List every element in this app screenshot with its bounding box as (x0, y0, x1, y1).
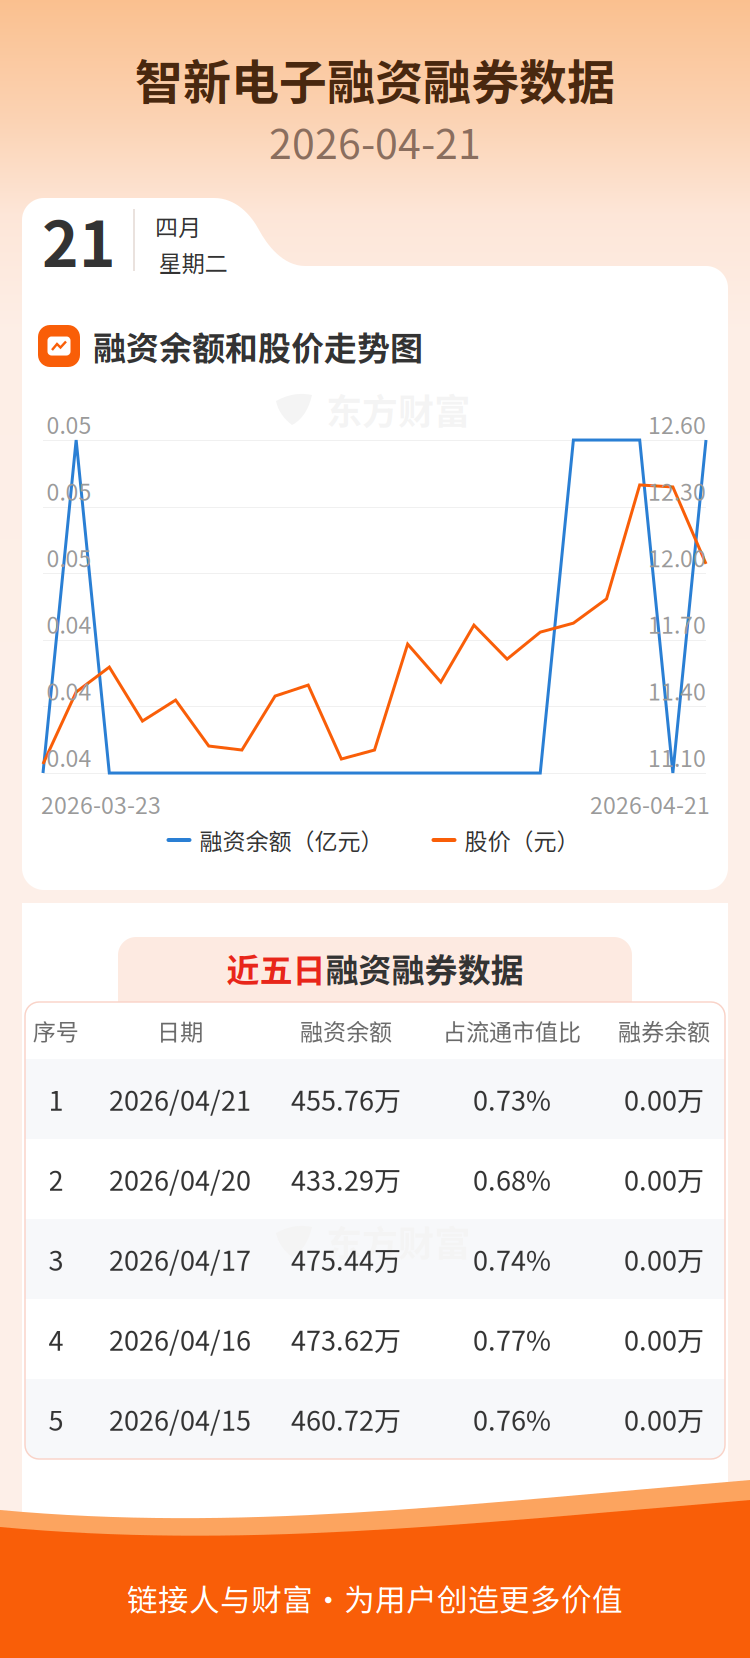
staticText: 2026/04/17 (109, 1239, 251, 1279)
staticText: 0.04 (46, 740, 91, 774)
staticText: 日期 (157, 1014, 203, 1047)
staticText: 3 (48, 1239, 63, 1279)
staticText: 1 (48, 1079, 63, 1119)
staticText: 2 (48, 1159, 63, 1199)
staticText: 0.00万 (624, 1319, 704, 1359)
staticText: 融资余额和股价走势图 (93, 322, 423, 370)
staticText: 股价（元） (464, 823, 579, 857)
staticText: 占流通市值比 (443, 1014, 581, 1047)
staticText: 0.00万 (624, 1079, 704, 1119)
staticText: 5 (48, 1399, 63, 1439)
staticText: 2026/04/21 (109, 1079, 251, 1119)
staticText: 11.70 (648, 607, 706, 640)
staticText: 475.44万 (291, 1239, 401, 1279)
staticText: 序号 (33, 1014, 79, 1047)
staticText: 12.60 (648, 407, 706, 441)
staticText: 0.05 (46, 407, 91, 441)
staticText: 0.77% (473, 1319, 551, 1359)
staticText: 12.00 (648, 540, 706, 574)
staticText: 0.00万 (624, 1239, 704, 1279)
staticText: 0.00万 (624, 1399, 704, 1439)
staticText: 2026/04/16 (109, 1319, 251, 1359)
staticText: 2026/04/15 (109, 1399, 251, 1439)
staticText: 0.73% (473, 1079, 551, 1119)
staticText: 融券余额 (618, 1014, 710, 1047)
staticText: 东方财富 (326, 1215, 470, 1267)
staticText: 2026-03-23 (41, 787, 161, 821)
staticText: 近五日 (226, 944, 325, 992)
staticText: 2026-04-21 (269, 111, 481, 171)
staticText: 0.04 (46, 607, 91, 640)
staticText: 473.62万 (291, 1319, 401, 1359)
staticText: 0.04 (46, 674, 91, 707)
staticText: 融资余额（亿元） (199, 823, 383, 857)
staticText: 11.40 (648, 674, 706, 707)
staticText: 0.76% (473, 1399, 551, 1439)
staticText: 智新电子融资融券数据 (135, 44, 615, 114)
staticText: 4 (48, 1319, 63, 1359)
staticText: 链接人与财富·为用户创造更多价值 (127, 1576, 623, 1620)
staticText: 0.05 (46, 474, 91, 507)
staticText: 460.72万 (291, 1399, 401, 1439)
staticText: 21 (42, 195, 116, 285)
staticText: 东方财富 (326, 383, 470, 435)
staticText: 融资融券数据 (325, 944, 523, 992)
staticText: 2026/04/20 (109, 1159, 251, 1199)
staticText: 12.30 (648, 474, 706, 507)
staticText: 0.68% (473, 1159, 551, 1199)
staticText: 433.29万 (291, 1159, 401, 1199)
staticText: 11.10 (648, 740, 706, 774)
staticText: 融资余额 (300, 1014, 392, 1047)
staticText: 0.74% (473, 1239, 551, 1279)
staticText: 0.05 (46, 540, 91, 574)
staticText: 2026-04-21 (590, 787, 710, 821)
staticText: 0.00万 (624, 1159, 704, 1199)
staticText: 455.76万 (291, 1079, 401, 1119)
staticText: 四月 (155, 209, 201, 243)
staticText: 星期二 (158, 245, 227, 279)
